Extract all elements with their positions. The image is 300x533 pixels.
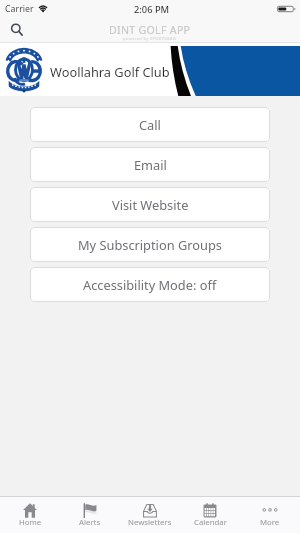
staticText: Call: [139, 116, 161, 133]
button[interactable]: Email: [30, 147, 270, 182]
staticText: Home: [19, 517, 42, 528]
staticText: Alerts: [79, 517, 101, 528]
button[interactable]: Search: [5, 19, 29, 41]
staticText: My Subscription Groups: [78, 236, 222, 253]
button[interactable]: Calendar: [180, 497, 240, 533]
button[interactable]: My Subscription Groups: [30, 227, 270, 262]
staticText: Woollahra Golf Club: [50, 63, 170, 80]
staticText: 2:06 PM: [134, 3, 170, 16]
button[interactable]: Call: [30, 107, 270, 142]
button[interactable]: Visit Website: [30, 187, 270, 222]
staticText: Email: [134, 156, 167, 173]
staticText: Carrier: [5, 3, 34, 15]
staticText: DINT GOLF APP: [109, 23, 191, 37]
staticText: Accessibility Mode: off: [83, 276, 217, 293]
button[interactable]: Newsletters: [120, 497, 180, 533]
staticText: Visit Website: [112, 196, 189, 213]
button[interactable]: Alerts: [60, 497, 120, 533]
staticText: Calendar: [194, 517, 227, 528]
staticText: powered by SPORTSBAG: [123, 35, 177, 41]
button[interactable]: More: [240, 497, 300, 533]
button[interactable]: Accessibility Mode: off: [30, 267, 270, 302]
button[interactable]: Home: [0, 497, 60, 533]
staticText: Newsletters: [128, 517, 172, 528]
staticText: More: [260, 517, 280, 528]
